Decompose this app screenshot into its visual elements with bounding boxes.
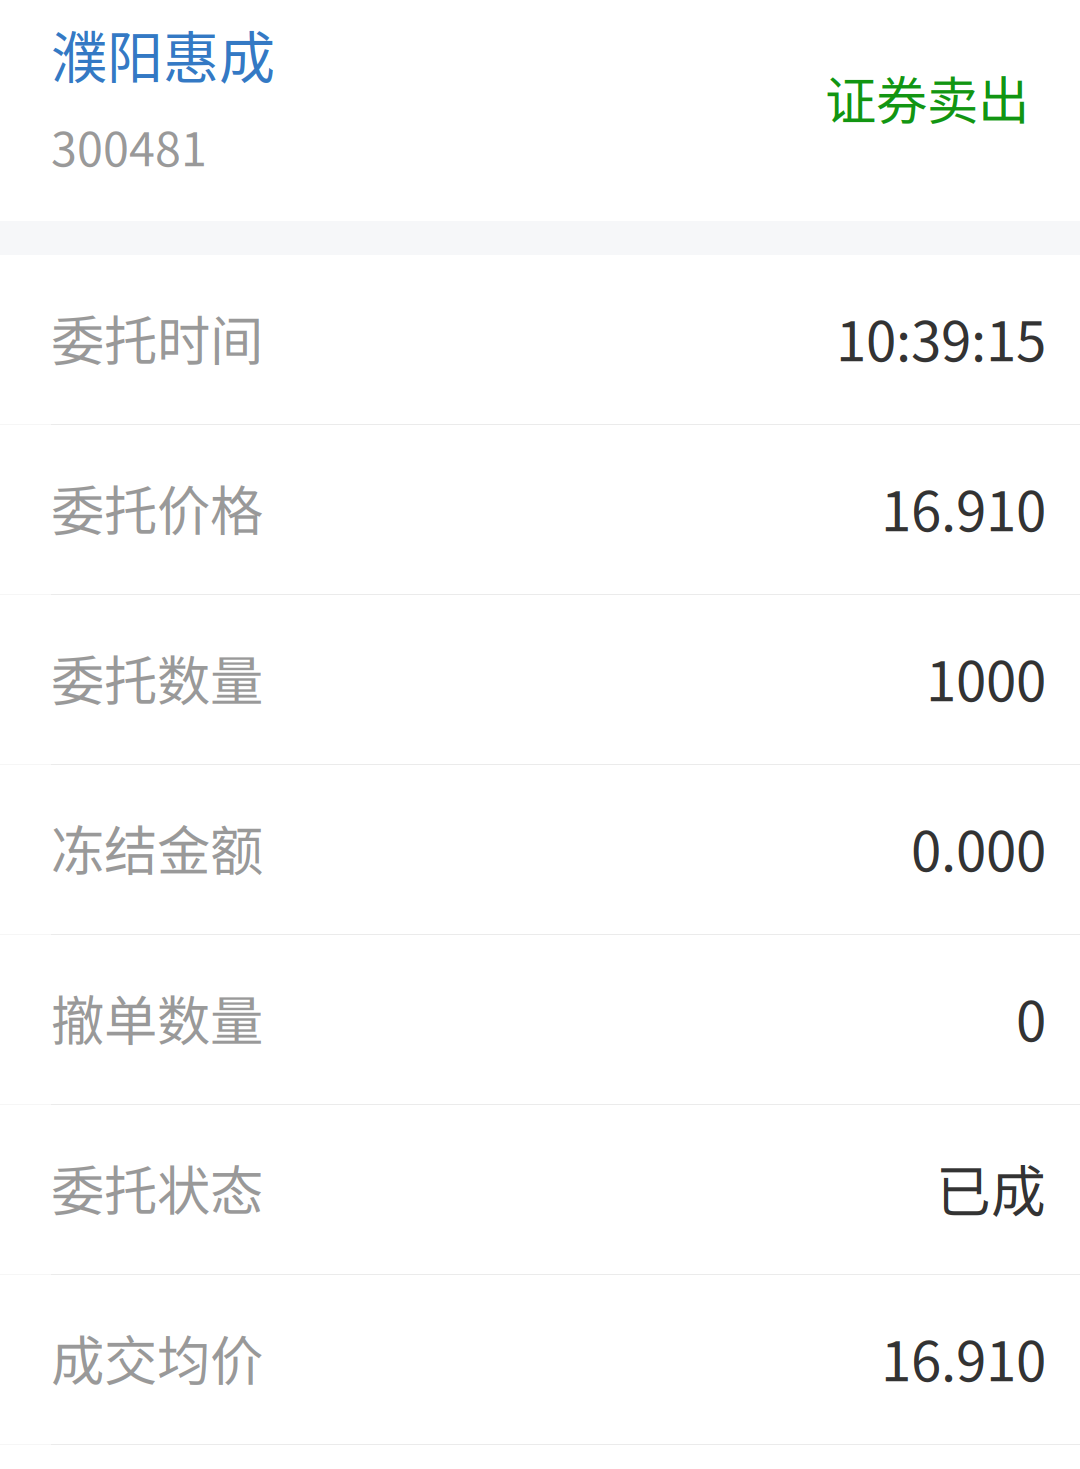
staticText: 1000: [926, 638, 1046, 717]
staticText: 成交均价: [51, 1319, 263, 1396]
staticText: 撤单数量: [51, 979, 263, 1056]
staticText: 0.000: [911, 808, 1046, 887]
button[interactable]: 委托时间: [0, 255, 1080, 425]
staticText: 委托数量: [51, 639, 263, 716]
button[interactable]: 冻结金额: [0, 765, 1080, 935]
staticText: 委托价格: [51, 469, 263, 546]
button[interactable]: 成交均价: [0, 1275, 1080, 1445]
staticText: 冻结金额: [51, 809, 263, 886]
staticText: 委托时间: [51, 299, 263, 376]
staticText: 300481: [51, 112, 207, 180]
button[interactable]: 委托价格: [0, 425, 1080, 595]
staticText: 委托状态: [51, 1149, 263, 1226]
staticText: 证券卖出: [825, 60, 1029, 134]
staticText: 16.910: [881, 1318, 1046, 1397]
staticText: 10:39:15: [836, 298, 1046, 377]
button[interactable]: 撤单数量: [0, 935, 1080, 1105]
button[interactable]: 委托数量: [0, 595, 1080, 765]
button[interactable]: 濮阳惠成: [51, 0, 275, 180]
button[interactable]: 委托状态: [0, 1105, 1080, 1275]
staticText: 0: [1016, 978, 1046, 1057]
staticText: 濮阳惠成: [51, 13, 275, 94]
staticText: 已成: [936, 1148, 1046, 1227]
staticText: 16.910: [881, 468, 1046, 547]
